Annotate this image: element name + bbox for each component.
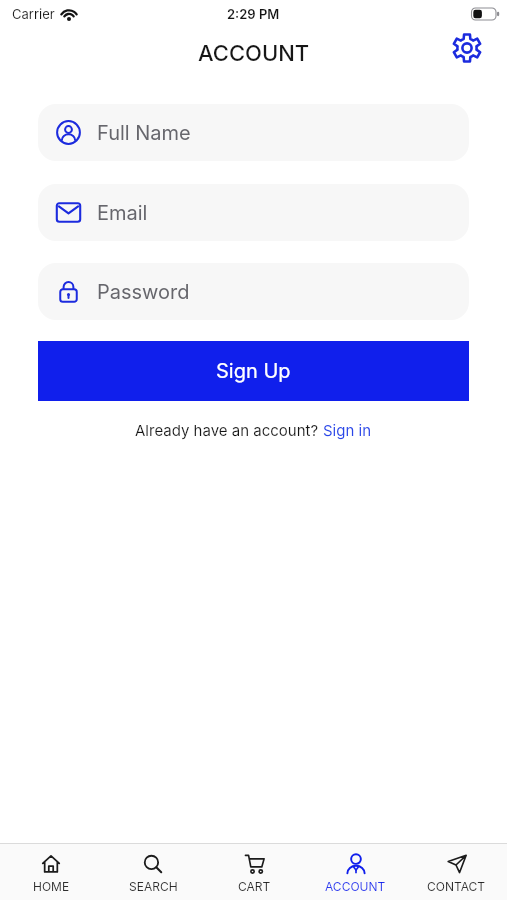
staticText: Email bbox=[97, 201, 148, 225]
button[interactable]: CONTACT bbox=[406, 844, 507, 900]
staticText: Sign Up bbox=[216, 359, 291, 383]
staticText: CONTACT bbox=[427, 879, 486, 894]
button[interactable]: SEARCH bbox=[102, 844, 204, 900]
staticText: ACCOUNT bbox=[325, 879, 386, 894]
button[interactable]: Email bbox=[38, 184, 469, 241]
button[interactable]: ACCOUNT bbox=[305, 844, 406, 900]
button[interactable]: Full Name bbox=[38, 104, 469, 161]
staticText: CART bbox=[238, 879, 271, 894]
button[interactable]: Password bbox=[38, 263, 469, 320]
staticText: Sign in bbox=[323, 421, 372, 439]
staticText: SEARCH bbox=[129, 879, 178, 894]
staticText: 2:29 PM bbox=[227, 6, 280, 22]
staticText: Carrier bbox=[12, 6, 55, 22]
staticText: ACCOUNT bbox=[198, 40, 310, 67]
button[interactable]: Sign Up bbox=[38, 341, 469, 401]
staticText: HOME bbox=[33, 879, 70, 894]
button[interactable]: Sign in bbox=[323, 421, 372, 439]
staticText: Full Name bbox=[97, 121, 191, 145]
staticText: Already have an account? bbox=[135, 421, 323, 439]
button[interactable]: HOME bbox=[0, 844, 102, 900]
button[interactable]: CART bbox=[204, 844, 305, 900]
staticText: Password bbox=[97, 280, 190, 304]
button[interactable] bbox=[452, 33, 482, 63]
